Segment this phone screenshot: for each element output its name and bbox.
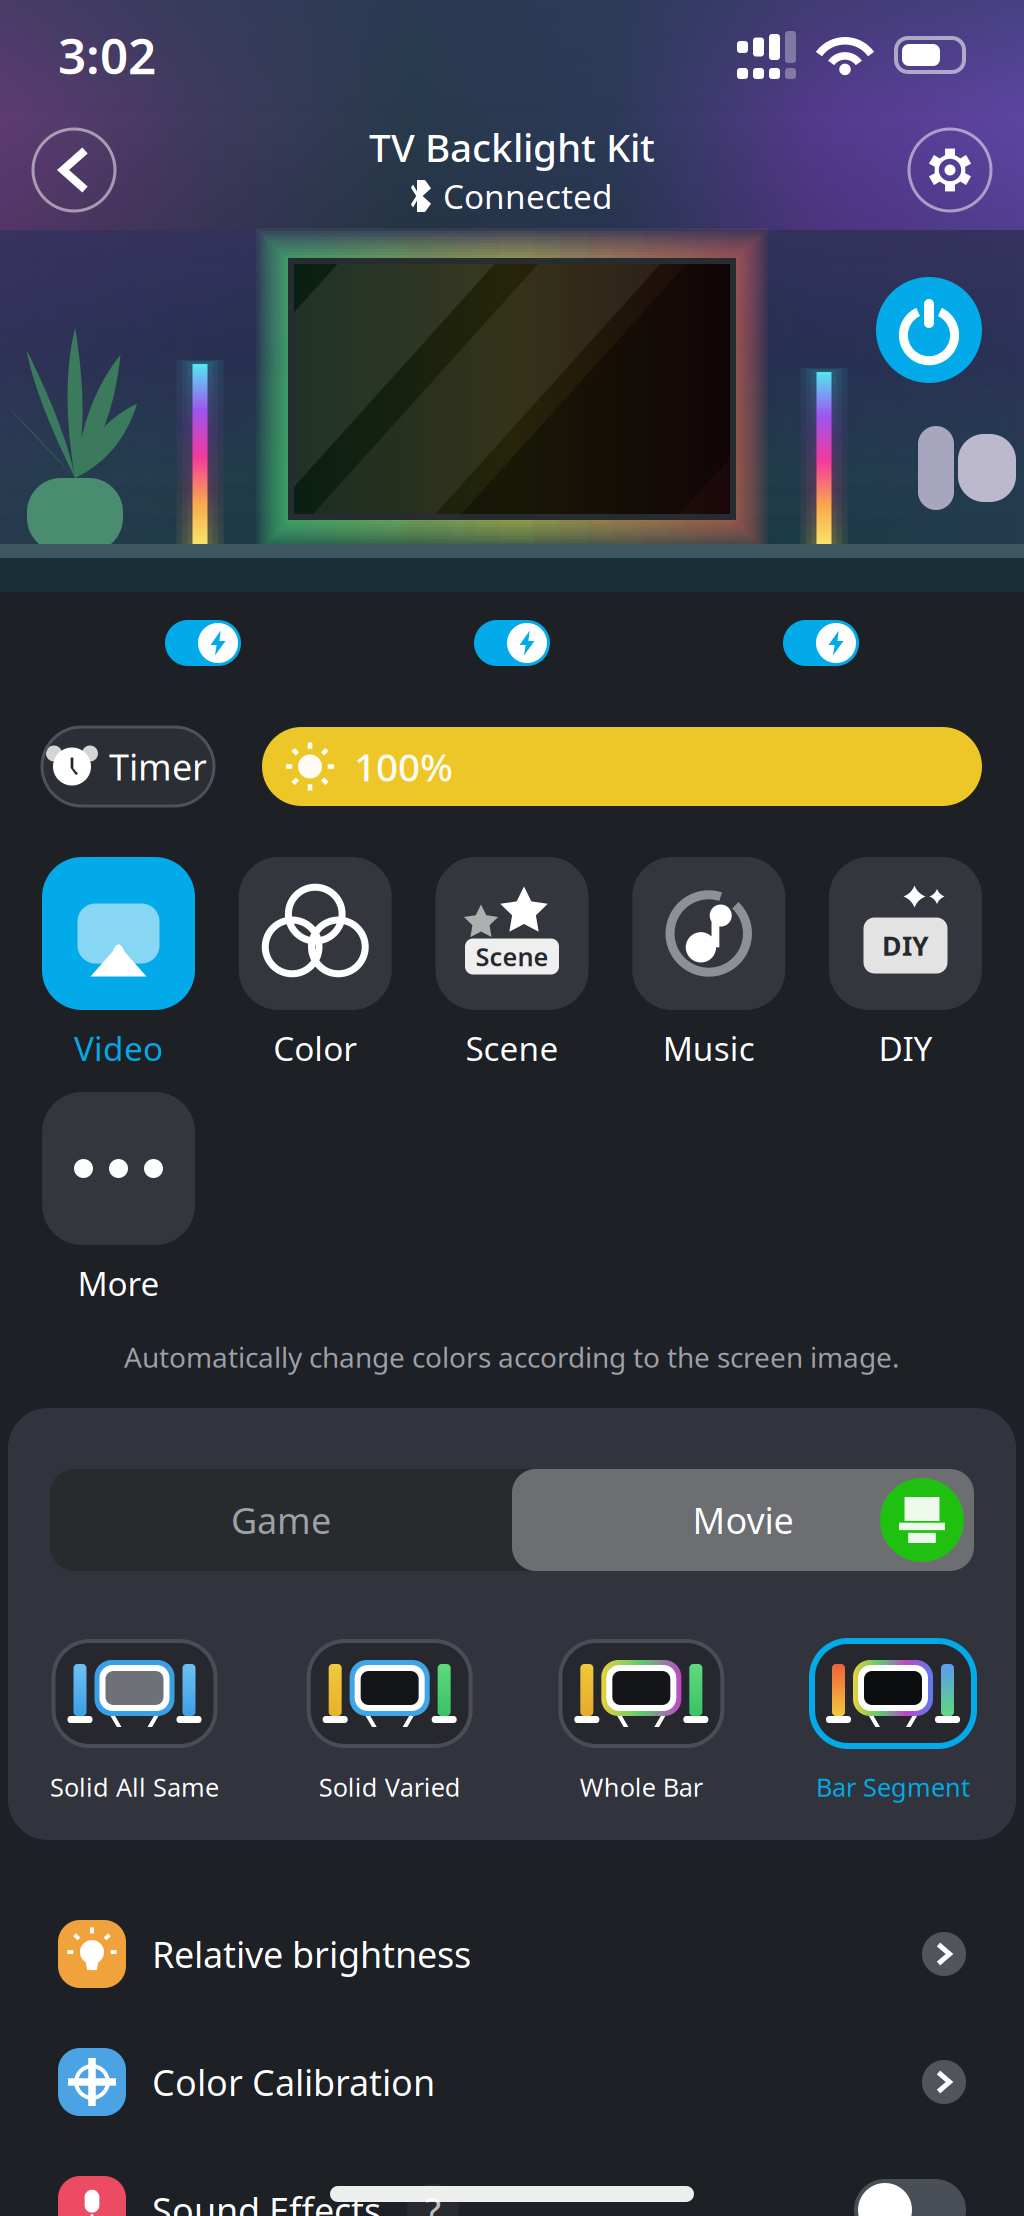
button[interactable]: Music bbox=[632, 857, 785, 1070]
button[interactable]: Settings bbox=[909, 129, 991, 211]
staticText: Automatically change colors according to… bbox=[124, 1338, 900, 1376]
staticText: ? bbox=[425, 2186, 441, 2216]
staticText: TV Backlight Kit bbox=[369, 121, 655, 173]
staticText: Solid All Same bbox=[50, 1770, 219, 1804]
staticText: DIY bbox=[882, 928, 929, 963]
staticText: Scene bbox=[475, 940, 548, 973]
button[interactable]: Brightness 100 percent bbox=[262, 727, 982, 806]
staticText: Sound Effects bbox=[152, 2186, 381, 2216]
button[interactable]: Scene bbox=[435, 857, 588, 1070]
staticText: 100% bbox=[354, 741, 453, 792]
staticText: Whole Bar bbox=[580, 1770, 703, 1804]
button[interactable]: Light bar power bbox=[783, 620, 859, 666]
staticText: Timer bbox=[109, 743, 207, 790]
button[interactable]: Solid Varied bbox=[309, 1641, 471, 1808]
staticText: Music bbox=[663, 1026, 755, 1070]
staticText: Color bbox=[273, 1026, 357, 1070]
button[interactable]: Video bbox=[42, 857, 195, 1070]
button[interactable]: Color Calibration bbox=[0, 2018, 1024, 2146]
button[interactable]: Whole Bar bbox=[560, 1641, 722, 1808]
button[interactable]: Timer bbox=[42, 727, 214, 806]
staticText: Scene bbox=[465, 1026, 558, 1070]
staticText: Solid Varied bbox=[319, 1770, 461, 1804]
button[interactable]: Back bbox=[33, 129, 115, 211]
button[interactable]: Relative brightness bbox=[0, 1890, 1024, 2018]
staticText: Relative brightness bbox=[152, 1930, 471, 1978]
button[interactable]: DIY bbox=[829, 857, 982, 1070]
button[interactable]: Color bbox=[239, 857, 392, 1070]
button[interactable]: Bar Segment bbox=[812, 1641, 974, 1808]
button[interactable]: Sound Effects bbox=[0, 2146, 1024, 2216]
button[interactable]: Movie bbox=[512, 1469, 974, 1571]
button[interactable]: More bbox=[42, 1092, 195, 1305]
staticText: Color Calibration bbox=[152, 2058, 435, 2106]
staticText: More bbox=[77, 1261, 159, 1305]
staticText: Game bbox=[231, 1496, 331, 1544]
staticText: DIY bbox=[878, 1026, 932, 1070]
button[interactable]: Game bbox=[50, 1469, 512, 1571]
button[interactable]: Light bar power bbox=[165, 620, 241, 666]
staticText: 3:02 bbox=[58, 22, 156, 88]
staticText: Movie bbox=[692, 1496, 793, 1544]
button[interactable]: Solid All Same bbox=[50, 1641, 219, 1808]
staticText: Connected bbox=[443, 174, 613, 218]
button[interactable]: Light bar power bbox=[474, 620, 550, 666]
staticText: Video bbox=[74, 1026, 163, 1070]
button[interactable]: Power bbox=[876, 277, 982, 383]
staticText: Bar Segment bbox=[816, 1770, 970, 1804]
